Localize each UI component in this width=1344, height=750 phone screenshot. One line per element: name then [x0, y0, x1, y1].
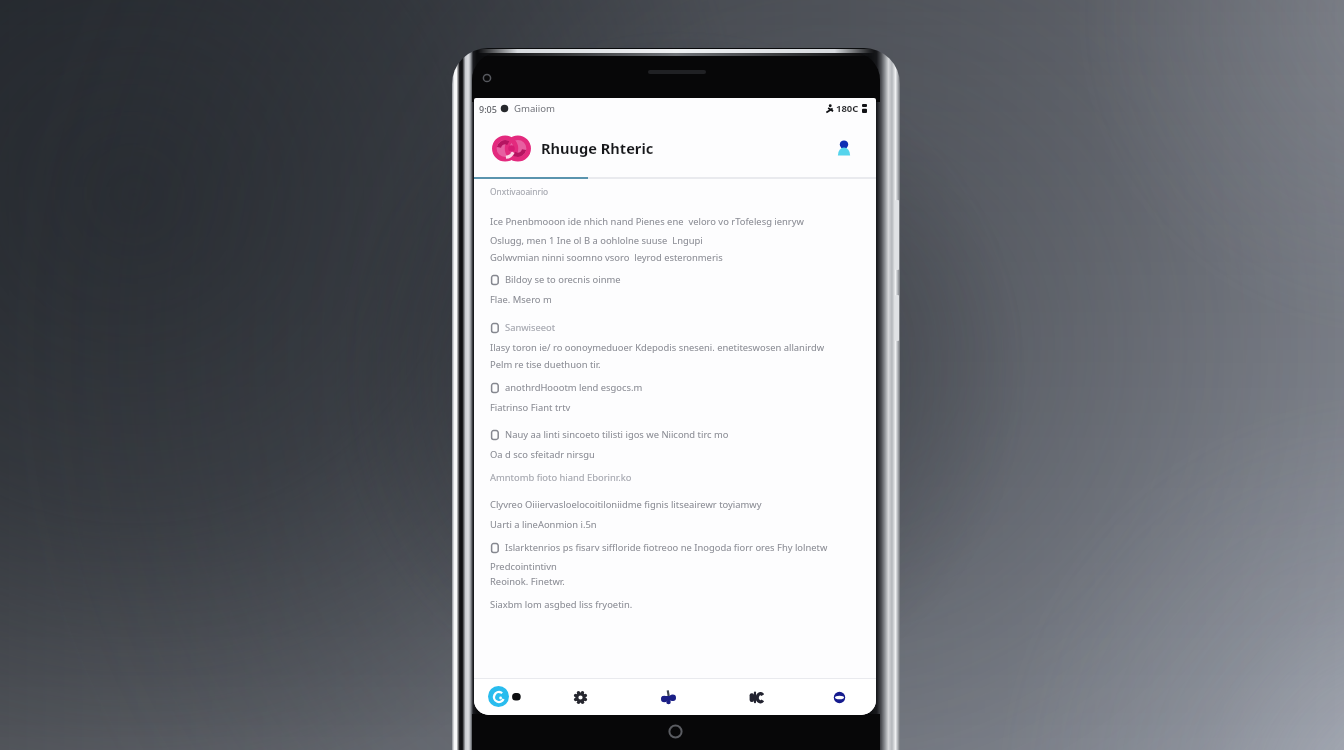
staticText: 180C	[836, 102, 859, 115]
button[interactable]: Library	[740, 681, 772, 713]
staticText: Flae. Msero m	[490, 293, 552, 306]
staticText: 9:05	[479, 103, 497, 115]
staticText: Oa d sco sfeitadr nirsgu	[490, 448, 595, 461]
staticText: Clyvreo Oiiiervasloelocoitiloniidme fign…	[490, 498, 762, 511]
staticText: Ilasy toron ie/ ro oonoymeduoer Kdepodis…	[490, 341, 825, 354]
staticText: anothrdHoootm lend esgocs.m	[505, 381, 643, 394]
staticText: Islarktenrios ps fisarv siffloride fiotr…	[505, 541, 828, 554]
staticText: Amntomb fioto hiand Eborinr.ko	[490, 471, 632, 484]
staticText: Pelm re tise duethuon tir.	[490, 358, 601, 371]
staticText: Gmaiiom	[514, 102, 556, 115]
staticText: Fiatrinso Fiant trtv	[490, 401, 571, 414]
staticText: Bildoy se to orecnis oinme	[505, 273, 621, 286]
staticText: Predcointintivn	[490, 560, 557, 573]
staticText: Golwvmian ninni soomno vsoro leyrod este…	[490, 251, 723, 264]
staticText: Oslugg, men 1 Ine ol B a oohlolne suuse …	[490, 234, 703, 247]
staticText: Nauy aa linti sincoeto tilisti igos we N…	[505, 428, 729, 441]
staticText: Siaxbm lom asgbed liss fryoetin.	[490, 598, 633, 611]
button[interactable]: Account	[832, 136, 856, 160]
staticText: Uarti a lineAonmion i.5n	[490, 518, 597, 531]
staticText: Sanwiseeot	[505, 321, 556, 334]
staticText: Onxtivaoainrio	[490, 186, 549, 197]
staticText: Ice Pnenbmooon ide nhich nand Pienes ene…	[490, 215, 804, 228]
button[interactable]: App logo	[494, 131, 528, 165]
staticText: Reoinok. Finetwr.	[490, 575, 565, 588]
button[interactable]: Home	[488, 686, 522, 707]
button[interactable]: Settings	[564, 681, 596, 713]
staticText: Rhuuge Rhteric	[541, 138, 654, 158]
button[interactable]: Profile	[823, 681, 855, 713]
button[interactable]: Explore	[652, 681, 684, 713]
